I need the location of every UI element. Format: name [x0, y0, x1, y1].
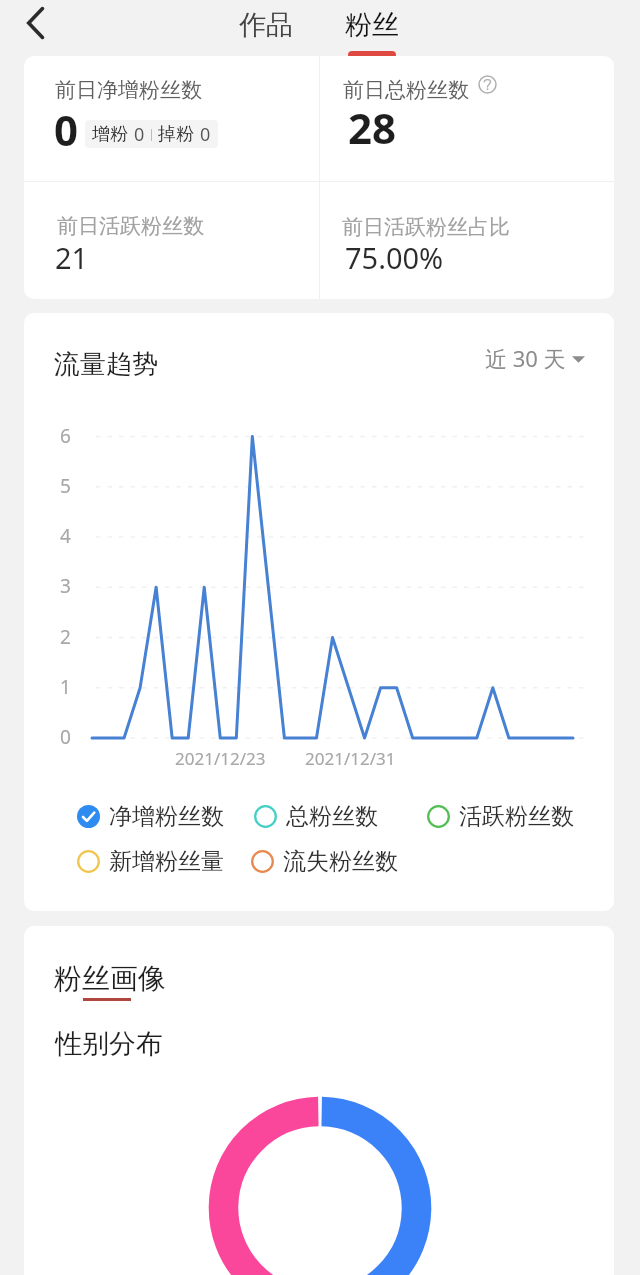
staticText: 粉丝画像: [54, 961, 166, 996]
button[interactable]: 净增粉丝数: [77, 799, 254, 833]
button[interactable]: 前日净增粉丝数: [24, 56, 319, 181]
button[interactable]: 前日总粉丝数: [319, 56, 614, 181]
staticText: 前日活跃粉丝占比: [342, 214, 510, 240]
button[interactable]: 流失粉丝数: [251, 844, 401, 878]
staticText: 总粉丝数: [286, 802, 378, 831]
staticText: 2: [60, 624, 71, 650]
button[interactable]: Back: [10, 0, 62, 52]
staticText: 4: [60, 523, 71, 549]
button[interactable]: 作品: [213, 0, 319, 56]
staticText: 新增粉丝量: [109, 847, 224, 876]
staticText: 0: [134, 122, 145, 147]
button[interactable]: 粉丝: [319, 0, 425, 56]
button[interactable]: 总粉丝数: [254, 799, 427, 833]
staticText: 0: [200, 122, 211, 147]
staticText: 2021/12/23: [175, 747, 266, 770]
staticText: 前日总粉丝数: [343, 77, 469, 103]
staticText: 前日净增粉丝数: [55, 77, 202, 103]
button[interactable]: 活跃粉丝数: [427, 799, 577, 833]
staticText: 流量趋势: [54, 348, 158, 381]
staticText: 近 30 天: [485, 343, 566, 373]
staticText: 5: [60, 473, 71, 499]
staticText: 0: [54, 101, 79, 158]
staticText: 粉丝: [345, 8, 399, 42]
staticText: 28: [348, 99, 397, 156]
staticText: 流失粉丝数: [283, 847, 398, 876]
staticText: 3: [60, 573, 71, 599]
staticText: 1: [60, 674, 71, 700]
staticText: 6: [60, 423, 71, 449]
staticText: 增粉: [92, 123, 128, 146]
staticText: 净增粉丝数: [109, 802, 224, 831]
button[interactable]: 前日活跃粉丝数: [24, 182, 319, 299]
staticText: 75.00%: [345, 238, 444, 277]
staticText: 21: [55, 238, 89, 277]
staticText: 活跃粉丝数: [459, 802, 574, 831]
button[interactable]: 近 30 天: [485, 341, 585, 375]
staticText: 前日活跃粉丝数: [57, 213, 204, 239]
button[interactable]: 新增粉丝量: [77, 844, 251, 878]
staticText: 作品: [239, 8, 293, 42]
staticText: 0: [60, 724, 71, 750]
staticText: 2021/12/31: [305, 747, 396, 770]
staticText: 性别分布: [55, 1027, 163, 1061]
button[interactable]: 前日活跃粉丝占比: [319, 182, 614, 299]
staticText: 掉粉: [158, 123, 194, 146]
